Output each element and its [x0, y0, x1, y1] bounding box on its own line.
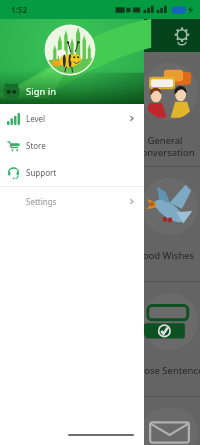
staticText: Choose Sentence [111, 364, 200, 377]
button[interactable]: Pick a Topic [0, 397, 200, 445]
button[interactable]: Good Wishes [0, 167, 200, 282]
staticText: Support [26, 167, 57, 178]
staticText: 1:52 [11, 4, 27, 15]
button[interactable]: Store [0, 132, 144, 159]
button[interactable]: Support [0, 159, 144, 186]
button[interactable]: Choose Sentence [0, 282, 200, 397]
staticText: Sign in [26, 85, 57, 98]
staticText: Settings [26, 196, 57, 207]
button[interactable]: Settings [171, 25, 193, 47]
staticText: Good Wishes [111, 249, 200, 262]
button[interactable]: Sign in [3, 82, 57, 100]
staticText: Store [26, 140, 46, 151]
button[interactable]: Settings [0, 188, 144, 215]
button[interactable]: General Conversation [0, 52, 200, 167]
staticText: General Conversation [111, 134, 200, 158]
staticText: Level [26, 113, 46, 124]
button[interactable]: Level [0, 105, 144, 132]
